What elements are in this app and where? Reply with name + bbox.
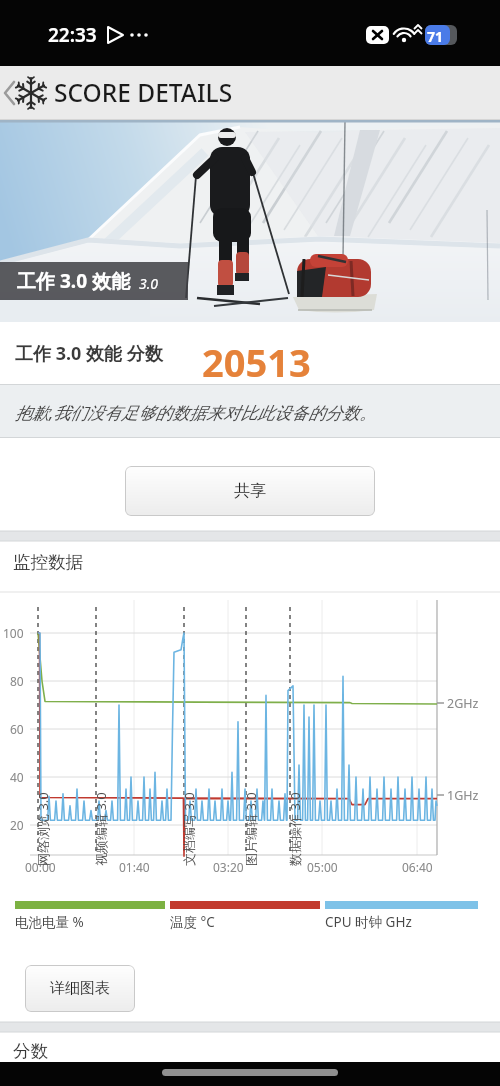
staticText: 网络浏览 3.0 [34, 792, 52, 866]
staticText: 22:33 [48, 22, 97, 48]
staticText: 60 [10, 721, 24, 737]
staticText: 图片编辑 3.0 [242, 792, 260, 866]
button[interactable]: 详细图表 [25, 965, 135, 1012]
staticText: 抱歉,我们没有足够的数据来对比此设备的分数。 [15, 401, 377, 424]
staticText: 03:20 [213, 859, 244, 875]
staticText: 100 [3, 625, 24, 641]
staticText: SCORE DETAILS [54, 76, 233, 109]
staticText: 20513 [202, 336, 311, 388]
staticText: 文档编写 3.0 [180, 792, 198, 866]
button[interactable] [0, 66, 60, 120]
staticText: 温度 °C [170, 913, 215, 931]
staticText: 详细图表 [50, 979, 110, 998]
staticText: 1GHz [447, 787, 479, 804]
staticText: 80 [10, 673, 24, 689]
staticText: 监控数据 [13, 551, 83, 573]
staticText: 05:00 [307, 859, 338, 875]
staticText: 3.0 [139, 274, 159, 293]
staticText: 工作 3.0 效能 [17, 268, 130, 294]
staticText: 01:40 [119, 859, 150, 875]
staticText: 20 [10, 817, 24, 833]
staticText: 分数 [13, 1040, 48, 1062]
staticText: 视频编辑 3.0 [92, 792, 110, 866]
staticText: 00:00 [25, 859, 56, 875]
staticText: 数据操作 3.0 [286, 792, 304, 866]
staticText: 2GHz [447, 695, 479, 712]
staticText: CPU 时钟 GHz [325, 913, 412, 931]
staticText: 电池电量 % [15, 913, 84, 931]
staticText: 06:40 [402, 859, 433, 875]
button[interactable]: 共享 [125, 466, 375, 516]
staticText: 工作 3.0 效能 分数 [15, 341, 163, 366]
staticText: 71 [427, 27, 444, 46]
staticText: 共享 [234, 481, 266, 501]
staticText: 40 [10, 769, 24, 785]
